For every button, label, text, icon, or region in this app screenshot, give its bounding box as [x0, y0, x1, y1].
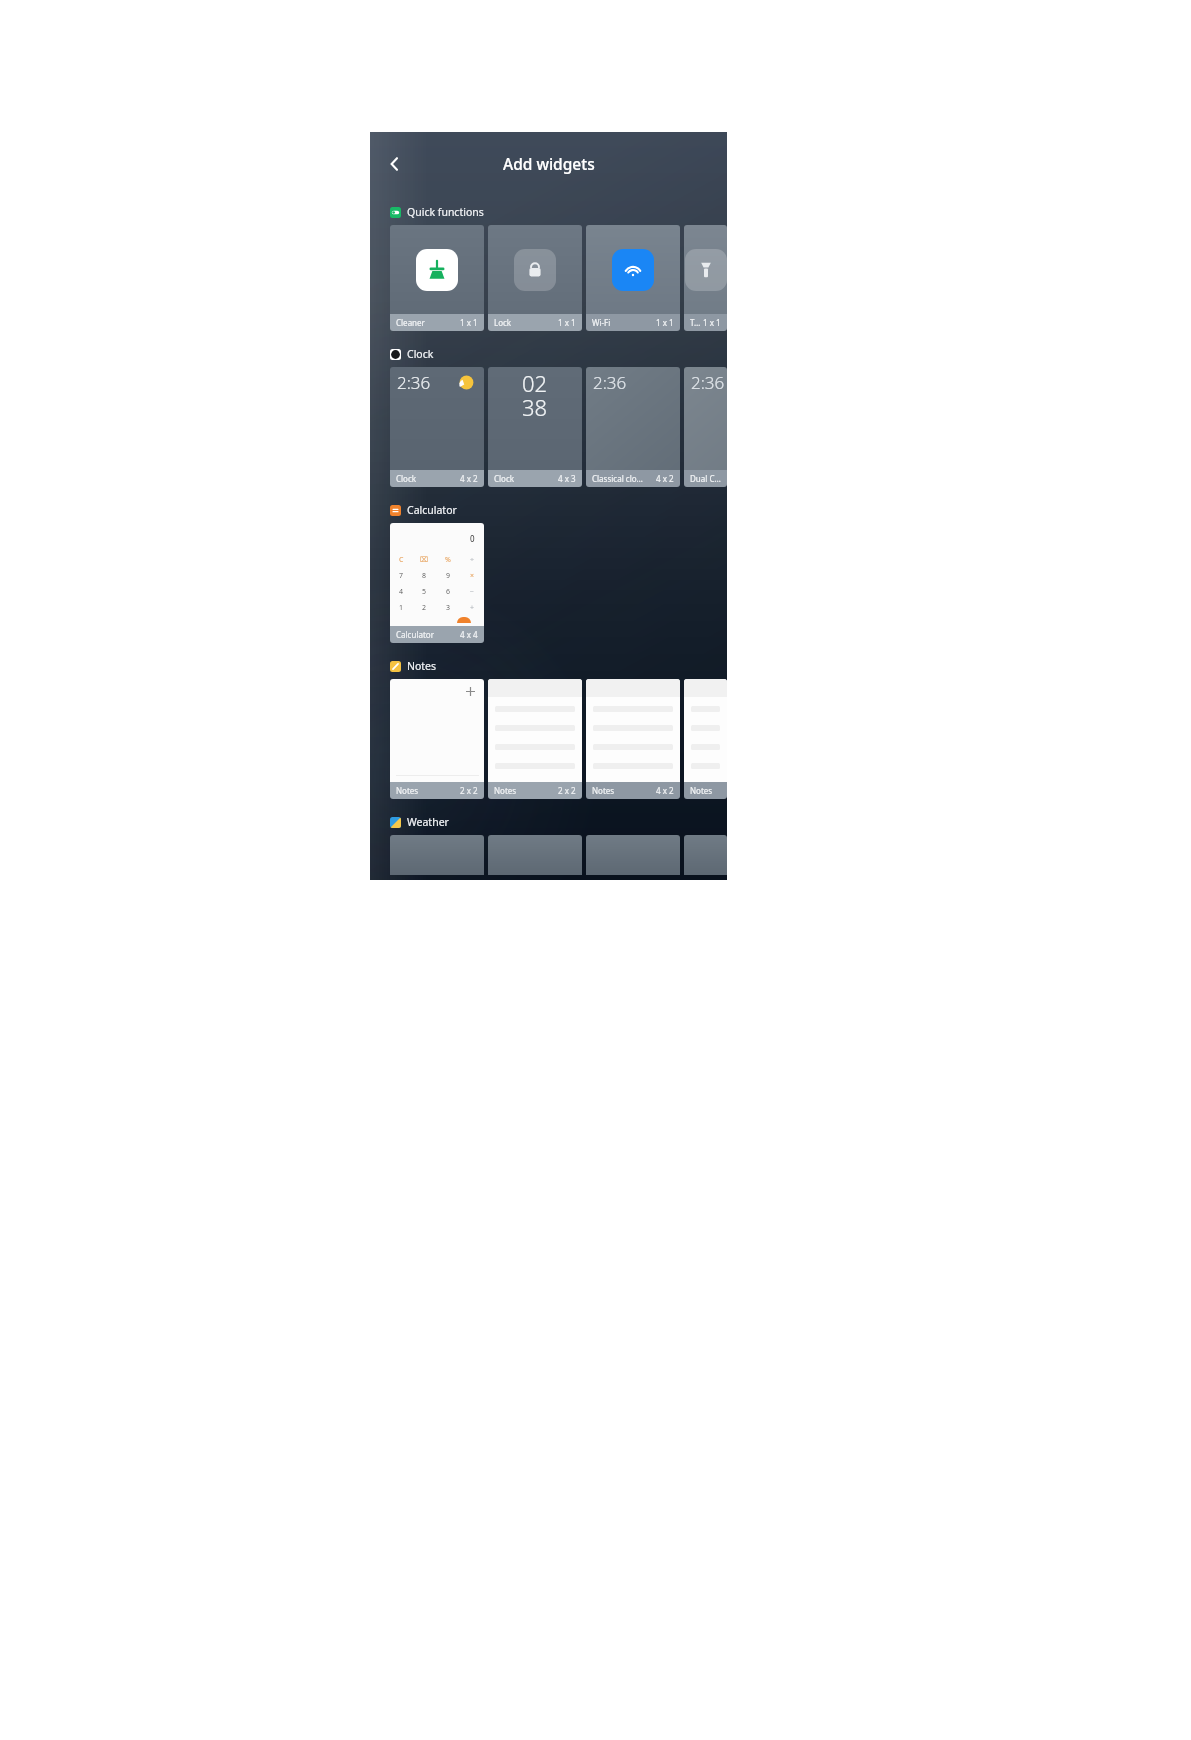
staticText: 3: [446, 603, 451, 613]
staticText: 0: [470, 533, 475, 544]
staticText: 1 x 1: [703, 317, 721, 328]
staticText: Notes: [494, 785, 558, 796]
staticText: 1 x 1: [656, 317, 674, 328]
staticText: Quick functions: [407, 205, 484, 219]
staticText: 4 x 2: [656, 473, 674, 484]
staticText: 4 x 2: [656, 785, 674, 796]
staticText: Clock: [407, 347, 434, 361]
staticText: Cleaner: [396, 317, 460, 328]
staticText: Clock: [396, 473, 460, 484]
staticText: Dual Cloc: [690, 473, 721, 484]
button[interactable]: Lock: [488, 225, 582, 331]
staticText: 4 x 2: [460, 473, 478, 484]
staticText: Notes: [396, 785, 460, 796]
staticText: Lock: [494, 317, 558, 328]
button[interactable]: Notes: [684, 679, 727, 799]
staticText: 2 x 2: [558, 785, 576, 796]
button[interactable]: Torch: [684, 225, 727, 331]
button[interactable]: [488, 835, 582, 875]
staticText: 1: [399, 603, 404, 613]
button[interactable]: [684, 835, 727, 875]
staticText: Notes: [690, 785, 721, 796]
staticText: 2: [422, 603, 427, 613]
button[interactable]: Wi-Fi: [586, 225, 680, 331]
staticText: Clock: [494, 473, 558, 484]
button[interactable]: Notes: [586, 679, 680, 799]
staticText: ⌧: [420, 556, 429, 564]
staticText: 2:36: [593, 371, 627, 394]
staticText: 9: [446, 571, 451, 581]
staticText: 4 x 4: [460, 629, 478, 640]
staticText: Calculator: [396, 629, 460, 640]
staticText: Add widgets: [503, 153, 595, 174]
staticText: 2 x 2: [460, 785, 478, 796]
staticText: ×: [470, 571, 475, 581]
button[interactable]: Cleaner: [390, 225, 484, 331]
button[interactable]: Back: [378, 147, 412, 181]
staticText: Notes: [407, 659, 437, 673]
staticText: 8: [422, 571, 427, 581]
staticText: 6: [446, 587, 451, 597]
staticText: 5: [422, 587, 427, 597]
button[interactable]: 0: [390, 523, 484, 643]
staticText: 2:36: [397, 371, 431, 394]
staticText: +: [470, 603, 475, 613]
button[interactable]: 02: [488, 367, 582, 487]
staticText: Calculator: [407, 503, 457, 517]
staticText: 38: [522, 392, 548, 422]
button[interactable]: 2:36: [390, 367, 484, 487]
staticText: C: [399, 555, 404, 565]
staticText: 2:36: [691, 371, 725, 394]
staticText: Classical clo…: [592, 473, 656, 484]
staticText: Notes: [592, 785, 656, 796]
button[interactable]: Notes: [390, 679, 484, 799]
button[interactable]: Notes: [488, 679, 582, 799]
staticText: ÷: [470, 555, 475, 565]
staticText: Weather: [407, 815, 449, 829]
staticText: 1 x 1: [460, 317, 478, 328]
staticText: Torch: [690, 317, 703, 328]
staticText: 1 x 1: [558, 317, 576, 328]
button[interactable]: [390, 835, 484, 875]
staticText: %: [445, 555, 451, 565]
staticText: 02: [522, 368, 548, 398]
staticText: 7: [399, 571, 404, 581]
button[interactable]: [586, 835, 680, 875]
staticText: 4: [399, 587, 404, 597]
button[interactable]: 2:36: [684, 367, 727, 487]
staticText: −: [470, 587, 475, 597]
staticText: Wi-Fi: [592, 317, 656, 328]
button[interactable]: 2:36: [586, 367, 680, 487]
staticText: 4 x 3: [558, 473, 576, 484]
